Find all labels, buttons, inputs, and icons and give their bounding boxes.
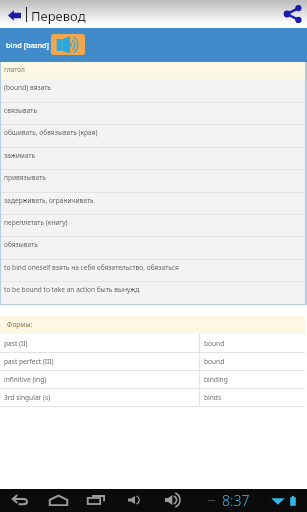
staticText: связывать xyxy=(4,106,37,115)
staticText: глагол xyxy=(4,65,25,74)
button[interactable]: Volume up xyxy=(160,489,186,512)
staticText: обязывать xyxy=(4,240,38,249)
staticText: 8:37 xyxy=(222,491,250,510)
staticText: bound xyxy=(204,339,225,348)
button[interactable]: Play pronunciation xyxy=(51,34,85,55)
staticText: to be bound to take an action быть вынуж… xyxy=(4,285,140,294)
staticText: binds xyxy=(204,393,222,402)
staticText: infinitive (ing) xyxy=(4,375,47,384)
button[interactable]: past (II) xyxy=(0,334,305,352)
staticText: past perfect (III) xyxy=(4,357,54,366)
button[interactable]: привязывать xyxy=(1,169,305,191)
button[interactable]: переплетать (книгу) xyxy=(1,214,305,236)
button[interactable]: Recent apps xyxy=(82,489,110,512)
button[interactable]: задерживать, ограничивать xyxy=(1,192,305,214)
button[interactable]: to be bound to take an action быть вынуж… xyxy=(1,281,305,303)
staticText: Перевод xyxy=(31,7,86,25)
staticText: Формы: xyxy=(7,320,33,329)
staticText: past (II) xyxy=(4,339,28,348)
staticText: привязывать xyxy=(4,173,46,182)
button[interactable]: infinitive (ing) xyxy=(0,370,305,388)
button[interactable]: Home xyxy=(44,489,73,512)
staticText: to bind oneself взять на себя обязательс… xyxy=(4,263,179,272)
staticText: (bound) вязать xyxy=(4,83,51,92)
button[interactable]: обязывать xyxy=(1,236,305,258)
staticText: зажимать xyxy=(4,151,36,160)
button[interactable]: Back xyxy=(2,0,26,28)
button[interactable]: связывать xyxy=(1,102,305,124)
button[interactable]: обшивать, обвязывать (края) xyxy=(1,124,305,146)
button[interactable]: Back xyxy=(7,489,33,512)
button[interactable]: 3rd singular (s) xyxy=(0,388,305,406)
button[interactable]: Volume down xyxy=(123,489,145,512)
button[interactable]: (bound) вязать xyxy=(1,79,305,101)
staticText: обшивать, обвязывать (края) xyxy=(4,128,98,137)
button[interactable]: зажимать xyxy=(1,147,305,169)
staticText: bind [baɪnd] xyxy=(6,40,50,50)
staticText: задерживать, ограничивать xyxy=(4,196,94,205)
staticText: binding xyxy=(204,375,228,384)
staticText: переплетать (книгу) xyxy=(4,218,68,227)
button[interactable]: to bind oneself взять на себя обязательс… xyxy=(1,259,305,281)
staticText: bound xyxy=(204,357,225,366)
button[interactable]: Share xyxy=(281,0,307,28)
button[interactable]: past perfect (III) xyxy=(0,352,305,370)
staticText: 3rd singular (s) xyxy=(4,393,51,402)
